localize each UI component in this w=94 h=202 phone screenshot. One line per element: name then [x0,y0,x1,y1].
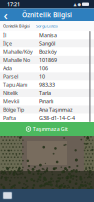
staticText: 983,33 [39,81,55,88]
staticText: G38-d1-14-C-4 [39,114,75,121]
staticText: Pafta [3,114,16,121]
staticText: Tapu Alanı [3,81,27,88]
button[interactable]: Taşınmaza Git [0,122,94,136]
staticText: Öznitelik Bilgisi [22,10,72,19]
staticText: 17:21 [7,1,20,8]
staticText: Bölge Tip [3,106,24,113]
staticText: ▲ [73,2,76,6]
staticText: Mahalle/Köy [3,48,33,55]
staticText: İl [3,32,6,39]
staticText: Mevkii [3,98,19,105]
button[interactable]: Öznitelik Bilgisi [0,21,33,31]
staticText: Manisa [39,32,57,39]
staticText: 106 [39,65,48,72]
staticText: İlçe [3,40,12,47]
staticText: Pınarlı [39,98,53,105]
staticText: Taşınmaza Git [33,125,68,133]
button[interactable]: Layers [0,192,12,199]
staticText: Mahalle No [3,56,30,63]
staticText: Sarıgöl [39,40,55,47]
staticText: ● [77,2,80,6]
staticText: Tarla [39,89,51,97]
staticText: Nitelik [3,89,18,97]
staticText: Ana Taşınmaz [39,106,73,113]
staticText: Sorgu Listesi [36,23,58,29]
staticText: ‹ [3,6,7,24]
staticText: 10 [39,73,45,80]
staticText: 101869 [39,56,57,63]
button[interactable]: Back [0,8,11,21]
staticText: Parsel [3,73,18,80]
button[interactable]: Sorgu Listesi [33,21,61,31]
staticText: Bozköy [39,48,57,55]
staticText: Ada [3,65,12,72]
staticText: Öznitelik Bilgisi [3,23,30,29]
